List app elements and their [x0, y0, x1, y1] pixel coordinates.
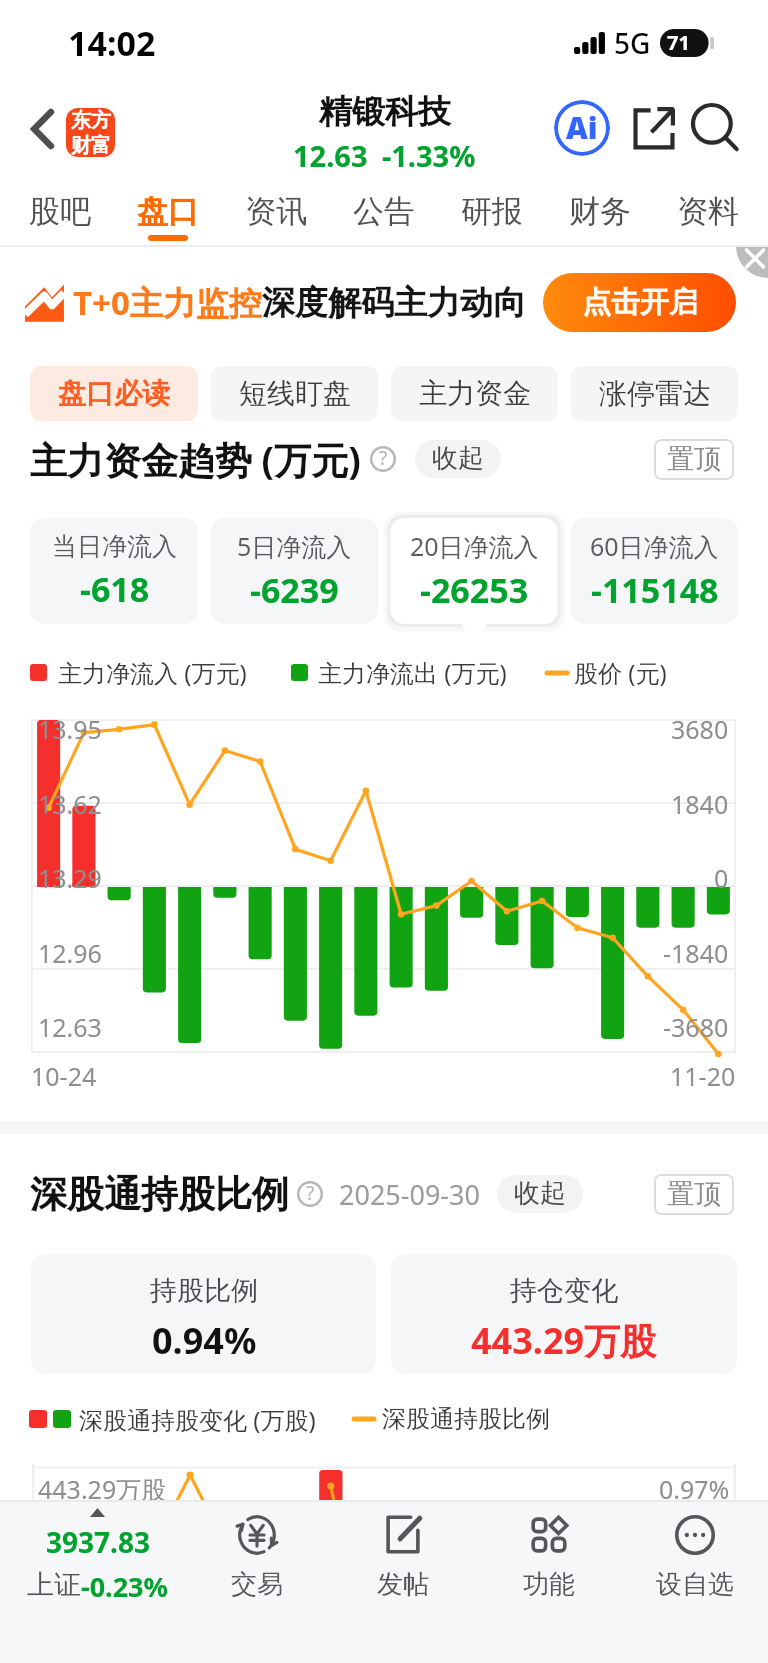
staticText: 精锻科技 [319, 91, 451, 133]
staticText: -1840 [663, 936, 729, 970]
staticText: 71 [667, 29, 690, 56]
button[interactable]: AI assistant [552, 98, 612, 158]
button[interactable] [391, 518, 558, 624]
staticText: 股价 (元) [574, 656, 667, 689]
button[interactable]: 20日净流入 [391, 518, 558, 624]
staticText: 功能 [523, 1568, 575, 1601]
staticText: -618 [80, 566, 150, 612]
staticText: 交易 [231, 1568, 283, 1601]
staticText: -115148 [591, 567, 719, 613]
staticText: 12.63 [293, 136, 368, 175]
button[interactable]: 收起 [415, 440, 501, 478]
button[interactable]: 置顶 [654, 439, 734, 480]
staticText: 发帖 [377, 1568, 429, 1601]
staticText: T+0主力监控 [73, 280, 262, 325]
button[interactable]: 资料 [654, 180, 762, 247]
button[interactable]: 持股比例 [31, 1254, 376, 1374]
staticText: 资料 [677, 192, 739, 231]
staticText: 0.94% [152, 1316, 257, 1365]
staticText: 深度解码主力动向 [262, 282, 526, 324]
button[interactable]: 公告 [330, 180, 438, 247]
staticText: 置顶 [667, 1177, 721, 1211]
staticText: 持仓变化 [510, 1274, 618, 1308]
button[interactable]: 财务 [546, 180, 654, 247]
button[interactable]: 股吧 [6, 180, 114, 247]
staticText: ? [306, 1180, 315, 1206]
staticText: 3937.83 [46, 1523, 150, 1561]
staticText: 东方 [71, 108, 111, 133]
staticText: 11-20 [670, 1059, 736, 1093]
button[interactable]: 发帖 [330, 1502, 476, 1663]
staticText: 1840 [671, 787, 729, 821]
staticText: 60日净流入 [590, 529, 719, 563]
button[interactable]: 持仓变化 [391, 1254, 737, 1374]
staticText: Ai [566, 107, 598, 148]
button[interactable]: 主力资金 [391, 366, 558, 421]
button[interactable]: 交易 [184, 1502, 330, 1663]
staticText: 13.95 [38, 712, 102, 746]
staticText: 点击开启 [582, 284, 698, 321]
button[interactable]: 盘口 [114, 180, 222, 247]
staticText: 0.97% [659, 1472, 730, 1506]
staticText: 短线盯盘 [239, 376, 351, 411]
staticText: 主力资金 [419, 376, 531, 411]
staticText: ? [379, 445, 388, 471]
staticText: 资讯 [245, 192, 307, 231]
staticText: 12.96 [38, 936, 102, 970]
staticText: -3680 [663, 1010, 729, 1044]
staticText: 3680 [671, 712, 729, 746]
staticText: 主力资金趋势 (万元) [30, 434, 361, 485]
button[interactable]: 功能 [476, 1502, 622, 1663]
button[interactable]: 3937.83 [0, 1502, 184, 1663]
staticText: 财富 [71, 133, 111, 157]
staticText: 涨停雷达 [599, 376, 711, 411]
staticText: 443.29万股 [471, 1316, 657, 1365]
staticText: -1.33% [382, 136, 476, 175]
staticText: 13.29 [38, 861, 102, 895]
staticText: 14:02 [68, 20, 156, 66]
button[interactable]: Back [0, 88, 64, 180]
staticText: 主力净流入 (万元) [58, 656, 247, 689]
button[interactable]: 盘口必读 [30, 366, 198, 421]
staticText: 2025-09-30 [339, 1176, 480, 1213]
staticText: 设自选 [656, 1568, 734, 1601]
button[interactable]: Eastmoney [66, 108, 115, 157]
button[interactable]: Share [626, 100, 682, 156]
staticText: 5G [614, 24, 651, 62]
staticText: 当日净流入 [52, 531, 177, 562]
staticText: 12.63 [38, 1010, 102, 1044]
staticText: 股吧 [29, 192, 91, 231]
staticText: 公告 [353, 192, 415, 231]
staticText: 10-24 [31, 1059, 97, 1093]
button[interactable]: 资讯 [222, 180, 330, 247]
staticText: 深股通持股变化 (万股) [79, 1403, 316, 1436]
button[interactable]: 设自选 [622, 1502, 768, 1663]
staticText: 深股通持股比例 [382, 1404, 550, 1434]
staticText: 盘口必读 [58, 376, 170, 411]
button[interactable]: 研报 [438, 180, 546, 247]
staticText: 上证 [27, 1568, 81, 1602]
button[interactable]: Search [688, 100, 744, 156]
button[interactable]: 点击开启 [543, 273, 736, 332]
staticText: 持股比例 [150, 1274, 258, 1308]
staticText: 收起 [514, 1177, 566, 1210]
button[interactable]: 短线盯盘 [211, 366, 378, 421]
button[interactable]: 60日净流入 [571, 518, 738, 624]
staticText: 研报 [461, 192, 523, 231]
staticText: 0 [714, 861, 729, 895]
button[interactable]: Close banner [728, 247, 768, 281]
button[interactable]: 当日净流入 [30, 518, 198, 624]
button[interactable]: 置顶 [654, 1174, 734, 1215]
staticText: 主力净流出 (万元) [318, 656, 507, 689]
staticText: -6239 [250, 567, 339, 613]
staticText: 深股通持股比例 [30, 1171, 289, 1218]
button[interactable]: 涨停雷达 [571, 366, 738, 421]
staticText: -0.23% [81, 1568, 168, 1605]
button[interactable]: 5日净流入 [211, 518, 378, 624]
staticText: -26253 [420, 567, 529, 613]
staticText: 5日净流入 [237, 529, 352, 563]
staticText: 财务 [569, 192, 631, 231]
staticText: 443.29万股 [38, 1472, 167, 1506]
button[interactable]: 收起 [497, 1175, 583, 1213]
staticText: 盘口 [137, 192, 199, 231]
